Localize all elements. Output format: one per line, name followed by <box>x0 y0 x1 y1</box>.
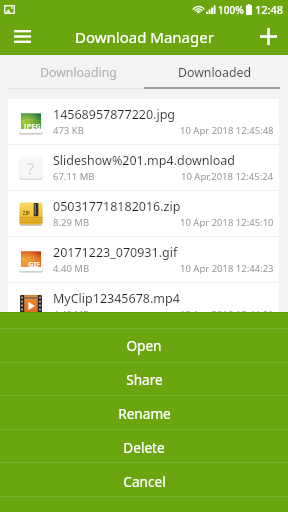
button[interactable]: 20171223_070931.gif <box>8 237 279 282</box>
button[interactable]: Delete <box>0 430 288 464</box>
staticText: Rename <box>118 404 171 423</box>
staticText: 67.11 MB <box>53 170 95 183</box>
button[interactable]: Slideshow%201.mp4.download <box>8 145 279 190</box>
staticText: 10 Apr,2018 12:45:24 <box>181 170 274 183</box>
staticText: Slideshow%201.mp4.download <box>53 152 236 169</box>
staticText: 10 Apr 2018 12:45:48 <box>180 124 274 137</box>
button[interactable]: 050317718182016.zip <box>8 191 279 236</box>
staticText: Delete <box>123 438 165 457</box>
staticText: Downloaded <box>178 64 252 81</box>
button[interactable]: Cancel <box>0 464 288 498</box>
button[interactable]: Downloading <box>10 55 146 89</box>
button[interactable]: Add download <box>248 18 288 55</box>
button[interactable]: Rename <box>0 396 288 430</box>
staticText: Share <box>126 370 163 389</box>
staticText: 050317718182016.zip <box>53 198 181 215</box>
staticText: 12:48 <box>255 2 284 17</box>
staticText: 14568957877220.jpg <box>53 106 176 123</box>
staticText: 4.40 MB <box>53 308 90 321</box>
button[interactable]: Share <box>0 362 288 396</box>
staticText: 4.40 MB <box>53 262 90 275</box>
staticText: 8.29 MB <box>53 216 90 229</box>
button[interactable]: Open navigation menu <box>0 18 44 55</box>
button[interactable]: Open <box>0 328 288 362</box>
staticText: 10 Apr 2018 12:45:10 <box>180 216 274 229</box>
staticText: 100% <box>218 3 244 17</box>
staticText: 20171223_070931.gif <box>53 244 178 261</box>
button[interactable]: MyClip12345678.mp4 <box>8 283 279 328</box>
staticText: Open <box>126 336 162 355</box>
staticText: 10 Apr 2018 12:44:01 <box>180 308 274 321</box>
staticText: 473 KB <box>53 124 84 137</box>
staticText: Cancel <box>123 472 166 491</box>
staticText: MyClip12345678.mp4 <box>53 290 180 307</box>
staticText: 10 Apr 2018 12:44:23 <box>180 262 274 275</box>
staticText: Downloading <box>40 64 117 81</box>
staticText: Download Manager <box>75 27 214 47</box>
button[interactable]: Downloaded <box>146 55 283 89</box>
button[interactable]: 14568957877220.jpg <box>8 99 279 144</box>
